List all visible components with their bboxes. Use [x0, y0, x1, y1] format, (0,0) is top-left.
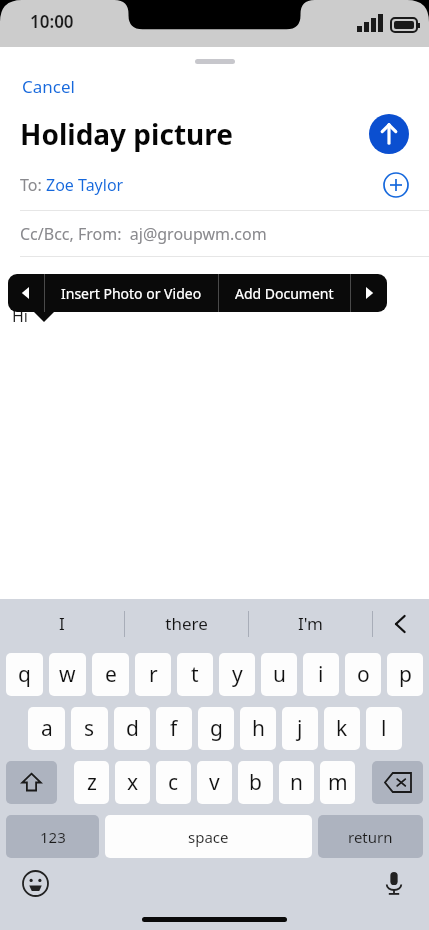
- button[interactable]: Back: [373, 599, 429, 648]
- button[interactable]: c: [156, 761, 191, 804]
- staticText: Insert Photo or Video: [61, 284, 202, 303]
- button[interactable]: p: [387, 653, 423, 696]
- button[interactable]: r: [135, 653, 171, 696]
- staticText: b: [249, 768, 262, 797]
- button[interactable]: Insert Photo or Video: [45, 284, 218, 303]
- button[interactable]: o: [345, 653, 381, 696]
- staticText: w: [59, 660, 76, 689]
- staticText: 10:00: [30, 10, 74, 33]
- button[interactable]: e: [92, 653, 129, 696]
- button[interactable]: 123: [6, 815, 99, 858]
- button[interactable]: Cc/Bcc, From: aj@groupwm.com: [0, 211, 429, 256]
- button[interactable]: g: [198, 707, 234, 750]
- staticText: n: [290, 768, 303, 797]
- staticText: m: [328, 768, 348, 797]
- staticText: q: [18, 660, 31, 689]
- staticText: z: [87, 768, 97, 797]
- staticText: Cancel: [22, 75, 75, 98]
- staticText: I: [59, 612, 65, 635]
- staticText: Cc/Bcc, From: aj@groupwm.com: [20, 223, 267, 245]
- staticText: e: [105, 660, 117, 689]
- staticText: I'm: [298, 612, 323, 635]
- button[interactable]: To:: [0, 172, 429, 198]
- staticText: Holiday picture: [20, 115, 369, 153]
- button[interactable]: Send: [369, 114, 409, 154]
- button[interactable]: return: [318, 815, 423, 858]
- button[interactable]: m: [320, 761, 355, 804]
- button[interactable]: l: [366, 707, 402, 750]
- staticText: x: [127, 768, 139, 797]
- staticText: p: [399, 660, 412, 689]
- staticText: a: [41, 714, 53, 743]
- staticText: h: [252, 714, 265, 743]
- staticText: Hi: [12, 305, 28, 327]
- button[interactable]: d: [114, 707, 150, 750]
- button[interactable]: Cancel: [18, 71, 79, 102]
- staticText: 123: [40, 827, 66, 847]
- button[interactable]: a: [28, 707, 65, 750]
- staticText: i: [318, 660, 324, 689]
- button[interactable]: j: [282, 707, 318, 750]
- staticText: there: [165, 612, 208, 635]
- staticText: y: [232, 660, 243, 689]
- staticText: Zoe Taylor: [46, 174, 383, 196]
- button[interactable]: space: [105, 815, 312, 858]
- button[interactable]: s: [71, 707, 108, 750]
- staticText: k: [336, 714, 348, 743]
- staticText: l: [381, 714, 387, 743]
- button[interactable]: Backspace: [372, 761, 423, 804]
- button[interactable]: f: [156, 707, 192, 750]
- staticText: j: [297, 714, 303, 743]
- button[interactable]: there: [125, 599, 248, 648]
- button[interactable]: b: [238, 761, 273, 804]
- button[interactable]: Add Document: [219, 284, 350, 303]
- staticText: space: [188, 827, 229, 847]
- staticText: g: [210, 714, 223, 743]
- button[interactable]: y: [219, 653, 255, 696]
- button[interactable]: w: [49, 653, 86, 696]
- button[interactable]: x: [115, 761, 150, 804]
- staticText: s: [84, 714, 95, 743]
- button[interactable]: t: [177, 653, 213, 696]
- button[interactable]: I: [0, 599, 124, 648]
- button[interactable]: h: [240, 707, 276, 750]
- button[interactable]: Previous: [8, 274, 44, 312]
- button[interactable]: I'm: [249, 599, 372, 648]
- staticText: return: [348, 827, 393, 847]
- staticText: d: [126, 714, 139, 743]
- button[interactable]: v: [197, 761, 232, 804]
- button[interactable]: Dictate: [377, 866, 411, 900]
- button[interactable]: Emoji: [18, 866, 52, 900]
- button[interactable]: u: [261, 653, 297, 696]
- staticText: t: [191, 660, 199, 689]
- button[interactable]: n: [279, 761, 314, 804]
- staticText: r: [149, 660, 158, 689]
- button[interactable]: Add contact: [383, 172, 409, 198]
- staticText: o: [357, 660, 370, 689]
- button[interactable]: i: [303, 653, 339, 696]
- button[interactable]: k: [324, 707, 360, 750]
- staticText: f: [170, 714, 178, 743]
- staticText: To:: [20, 174, 46, 196]
- button[interactable]: z: [74, 761, 109, 804]
- staticText: c: [168, 768, 179, 797]
- button[interactable]: q: [6, 653, 43, 696]
- button[interactable]: Next: [351, 274, 387, 312]
- staticText: Add Document: [235, 284, 334, 303]
- staticText: u: [273, 660, 286, 689]
- button[interactable]: Shift: [6, 761, 57, 804]
- staticText: v: [209, 768, 220, 797]
